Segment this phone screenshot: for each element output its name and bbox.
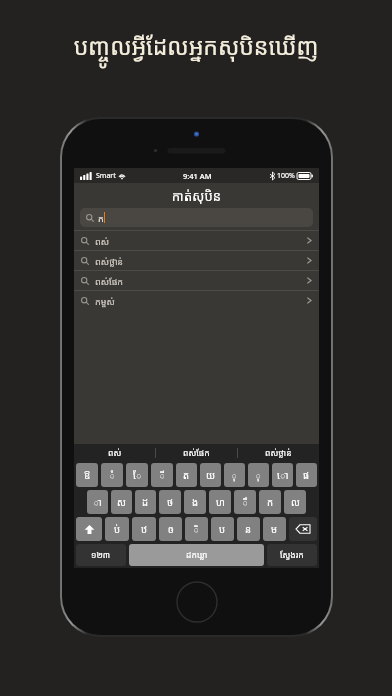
button[interactable]: ង	[184, 490, 206, 514]
button[interactable]: ក	[80, 208, 313, 227]
button[interactable]: ា	[87, 490, 108, 514]
staticText: ុ	[231, 469, 238, 482]
staticText: ហ	[216, 496, 225, 509]
button[interactable]: ហ	[209, 490, 231, 514]
staticText: ដកឃ្លា	[186, 549, 208, 561]
button[interactable]: ប	[211, 517, 234, 541]
staticText: ប់	[114, 523, 121, 536]
button[interactable]: ន	[237, 517, 260, 541]
staticText: ំ	[109, 469, 116, 482]
staticText: ម	[271, 523, 278, 536]
staticText: ស	[117, 496, 126, 509]
staticText: ត	[183, 469, 190, 482]
staticText: ពស់	[108, 447, 122, 459]
button[interactable]: ស្វែងរក	[267, 544, 317, 566]
staticText: ថ	[167, 496, 174, 509]
staticText: ពស់ផែក	[183, 447, 210, 459]
staticText: ក	[267, 496, 274, 509]
button[interactable]: ពស់ថ្លាន់	[74, 250, 319, 270]
staticText: ឲ	[168, 523, 174, 536]
staticText: ១២៣	[91, 549, 111, 561]
button[interactable]: Backspace	[289, 517, 317, 541]
button[interactable]: ពស់	[74, 444, 155, 461]
staticText: 9:41 AM	[183, 171, 212, 181]
button[interactable]: ដកឃ្លា	[129, 544, 264, 566]
staticText: ា	[93, 496, 102, 509]
button[interactable]: ស	[111, 490, 132, 514]
staticText: ី	[159, 469, 166, 482]
staticText: ល	[291, 496, 300, 509]
staticText: បញ្ចូលអ្វីដែលអ្នកសុបិនឃើញ	[0, 30, 392, 61]
button[interactable]: ោ	[272, 463, 293, 487]
button[interactable]: ១២៣	[76, 544, 126, 566]
button[interactable]: ី	[151, 463, 173, 487]
button[interactable]: ិ	[185, 517, 208, 541]
button[interactable]: ប់	[105, 517, 129, 541]
staticText: ដ	[142, 496, 149, 509]
staticText: ង	[192, 496, 199, 509]
staticText: Smart	[96, 171, 116, 181]
button[interactable]: ថ	[159, 490, 181, 514]
button[interactable]: ឹ	[234, 490, 256, 514]
staticText: ពស់ថ្លាន់	[265, 447, 292, 459]
button[interactable]: ពស់ផែក	[74, 270, 319, 290]
staticText: យ	[206, 469, 216, 482]
button[interactable]: ពស់ផែក	[156, 444, 237, 461]
staticText: ោ	[277, 469, 289, 482]
button[interactable]: យ	[200, 463, 221, 487]
staticText: ិ	[193, 523, 200, 536]
button[interactable]: ដ	[135, 490, 156, 514]
button[interactable]: ឱ	[76, 463, 98, 487]
button[interactable]: ពស់	[74, 230, 319, 250]
button[interactable]: ែ	[126, 463, 148, 487]
button[interactable]: ឋ	[132, 517, 156, 541]
staticText: ែ	[133, 469, 142, 482]
button[interactable]: Shift	[76, 517, 102, 541]
button[interactable]: ត	[176, 463, 197, 487]
staticText: ឋ	[141, 523, 148, 536]
staticText: ពស់ផែក	[95, 275, 124, 287]
button[interactable]: ផ	[296, 463, 317, 487]
staticText: ក	[98, 212, 104, 224]
staticText: ពស់	[95, 235, 110, 247]
staticText: ឱ	[84, 469, 91, 482]
staticText: ស្វែងរក	[280, 549, 304, 561]
button[interactable]: ពស់ថ្លាន់	[238, 444, 319, 461]
button[interactable]: ុ	[224, 463, 245, 487]
staticText: 100%	[277, 171, 295, 181]
staticText: កម្ចស់	[95, 295, 115, 307]
staticText: ប	[219, 523, 226, 536]
button[interactable]: ឲ	[159, 517, 182, 541]
staticText: ពស់ថ្លាន់	[95, 255, 124, 267]
button[interactable]: កម្ចស់	[74, 290, 319, 310]
staticText: ផ	[303, 469, 310, 482]
button[interactable]: ុ	[248, 463, 269, 487]
staticText: កាត់សុបិន	[74, 187, 319, 205]
staticText: ុ	[255, 469, 262, 482]
button[interactable]: ក	[259, 490, 281, 514]
staticText: ឹ	[242, 496, 249, 509]
staticText: ន	[245, 523, 252, 536]
button[interactable]: ម	[263, 517, 286, 541]
button[interactable]: ល	[284, 490, 306, 514]
button[interactable]: ំ	[101, 463, 123, 487]
